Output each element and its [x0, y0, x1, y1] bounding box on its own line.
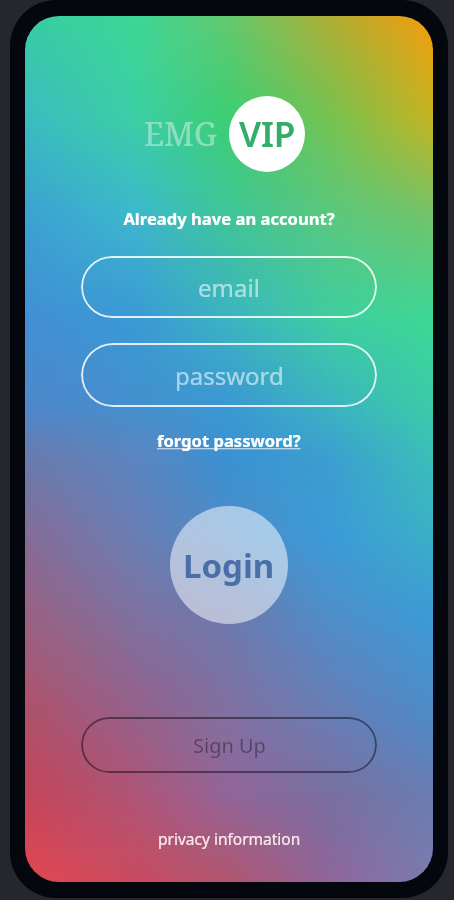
button[interactable]: EMG VIP logo — [144, 96, 305, 172]
button[interactable]: Sign Up — [81, 717, 377, 773]
staticText: VIP — [239, 110, 295, 158]
staticText: forgot password? — [157, 429, 301, 452]
button[interactable]: email — [81, 256, 377, 318]
button[interactable]: Login — [170, 506, 288, 624]
staticText: Already have an account? — [123, 207, 335, 230]
button[interactable]: password — [81, 343, 377, 407]
staticText: password — [175, 359, 284, 392]
staticText: email — [198, 271, 260, 304]
button[interactable]: privacy information — [158, 828, 301, 849]
staticText: EMG — [144, 112, 217, 156]
button[interactable]: forgot password? — [157, 429, 301, 452]
staticText: Sign Up — [193, 732, 266, 759]
staticText: Login — [183, 543, 275, 588]
staticText: privacy information — [158, 828, 301, 849]
